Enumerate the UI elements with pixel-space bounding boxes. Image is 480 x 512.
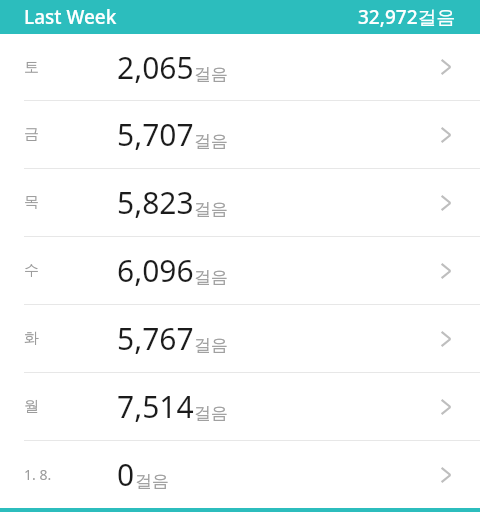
- staticText: 걸음: [194, 64, 228, 85]
- button[interactable]: 토: [0, 34, 480, 100]
- button[interactable]: 화: [0, 305, 480, 372]
- other: View day details: [433, 258, 459, 284]
- staticText: 7,514: [117, 386, 194, 427]
- staticText: 걸음: [194, 199, 228, 220]
- staticText: 1. 8.: [24, 465, 52, 484]
- staticText: 5,823: [117, 182, 194, 223]
- staticText: 걸음: [135, 471, 169, 492]
- staticText: 화: [24, 329, 39, 348]
- staticText: 2,065: [117, 47, 194, 88]
- button[interactable]: Last Week: [0, 0, 480, 34]
- staticText: 걸음: [194, 335, 228, 356]
- staticText: 0: [117, 454, 135, 495]
- staticText: 목: [24, 193, 39, 212]
- staticText: 32,972걸음: [358, 4, 456, 30]
- other: View day details: [433, 122, 459, 148]
- staticText: 금: [24, 125, 39, 144]
- staticText: 걸음: [194, 403, 228, 424]
- staticText: 월: [24, 397, 39, 416]
- staticText: 걸음: [194, 131, 228, 152]
- staticText: 걸음: [194, 267, 228, 288]
- staticText: 5,767: [117, 318, 194, 359]
- button[interactable]: 수: [0, 237, 480, 304]
- other: View day details: [433, 190, 459, 216]
- staticText: Last Week: [24, 4, 117, 30]
- button[interactable]: 월: [0, 373, 480, 440]
- other: View day details: [433, 394, 459, 420]
- button[interactable]: 목: [0, 169, 480, 236]
- staticText: 6,096: [117, 250, 194, 291]
- other: View day details: [433, 54, 459, 80]
- other: View day details: [433, 462, 459, 488]
- staticText: 5,707: [117, 114, 194, 155]
- other: View day details: [433, 326, 459, 352]
- button[interactable]: 1. 8.: [0, 441, 480, 508]
- staticText: 토: [24, 58, 39, 77]
- button[interactable]: 금: [0, 101, 480, 168]
- staticText: 수: [24, 261, 39, 280]
